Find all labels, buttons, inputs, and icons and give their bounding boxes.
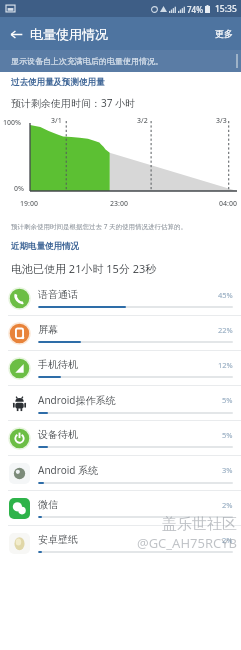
- staticText: 显示设备自上次充满电后的电量使用情况。: [11, 56, 163, 66]
- staticText: 预计剩余使用时间是根据您过去 7 天的使用情况进行估算的。: [11, 222, 188, 231]
- staticText: 设备待机: [38, 428, 222, 441]
- staticText: 预计剩余使用时间：37 小时: [11, 96, 136, 110]
- staticText: 12%: [218, 360, 233, 370]
- staticText: 15:35: [215, 3, 237, 15]
- staticText: 45%: [218, 290, 233, 300]
- button[interactable]: 安卓壁纸: [0, 526, 241, 560]
- staticText: 19:00: [20, 199, 38, 209]
- staticText: Android操作系统: [38, 393, 222, 407]
- button[interactable]: Android 系统: [0, 456, 241, 490]
- staticText: 3/2: [137, 116, 148, 126]
- button[interactable]: 更多: [207, 22, 241, 45]
- staticText: 3%: [222, 465, 233, 475]
- button[interactable]: 微信: [0, 491, 241, 525]
- staticText: 2%: [222, 500, 233, 510]
- staticText: 手机待机: [38, 358, 218, 371]
- staticText: 安卓壁纸: [38, 533, 222, 546]
- button[interactable]: Back: [5, 23, 27, 45]
- staticText: 04:00: [219, 199, 237, 209]
- staticText: 更多: [215, 28, 233, 39]
- staticText: 74%: [187, 4, 203, 15]
- button[interactable]: 语音通话: [0, 281, 241, 315]
- staticText: 近期电量使用情况: [11, 241, 79, 252]
- button[interactable]: 手机待机: [0, 351, 241, 385]
- staticText: 屏幕: [38, 323, 218, 336]
- staticText: 电量使用情况: [30, 26, 108, 42]
- button[interactable]: 屏幕: [0, 316, 241, 350]
- staticText: 盖乐世社区: [162, 515, 237, 534]
- button[interactable]: Android操作系统: [0, 386, 241, 420]
- staticText: 5%: [222, 430, 233, 440]
- staticText: 0%: [14, 184, 24, 194]
- staticText: 100%: [3, 118, 21, 128]
- staticText: 过去使用量及预测使用量: [11, 77, 105, 88]
- staticText: 3/1: [51, 116, 62, 126]
- staticText: 2%: [222, 535, 233, 545]
- staticText: 3/3: [216, 116, 227, 126]
- staticText: 语音通话: [38, 288, 218, 301]
- staticText: Android 系统: [38, 463, 222, 477]
- button[interactable]: 设备待机: [0, 421, 241, 455]
- staticText: 22%: [218, 325, 233, 335]
- staticText: @GC_AH75RCYB: [136, 534, 237, 552]
- staticText: 微信: [38, 498, 222, 511]
- staticText: 23:00: [110, 199, 128, 209]
- staticText: 5%: [222, 395, 233, 405]
- staticText: 电池已使用 21小时 15分 23秒: [11, 261, 157, 276]
